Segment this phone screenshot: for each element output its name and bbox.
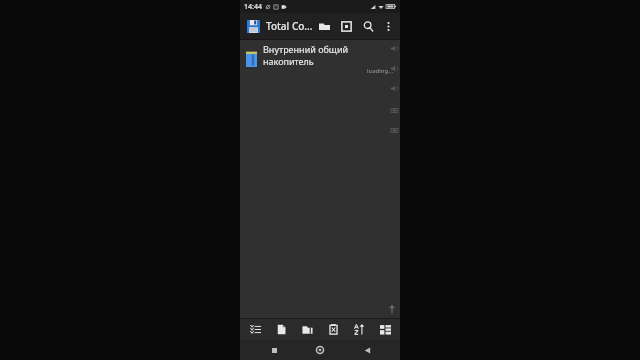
button[interactable]: Select	[244, 319, 266, 340]
staticText: накопитель	[263, 55, 314, 67]
button[interactable]: Folders	[313, 15, 335, 37]
button[interactable]: Apps	[335, 15, 357, 37]
button[interactable]: Recents	[261, 340, 287, 360]
button[interactable]: New file	[270, 319, 292, 340]
button[interactable]: Delete	[322, 319, 344, 340]
button[interactable]: Exchange	[374, 319, 396, 340]
button[interactable]: New folder	[296, 319, 318, 340]
button[interactable]: Search	[357, 15, 379, 37]
staticText: Total Co...	[266, 19, 313, 33]
button[interactable]: Sort	[348, 319, 370, 340]
staticText: Внутренний общий	[263, 43, 349, 55]
button[interactable]: Total Commander	[243, 16, 263, 36]
button[interactable]: Home	[307, 340, 333, 360]
button[interactable]: More options	[379, 15, 397, 37]
staticText: 14:44	[244, 2, 262, 12]
button[interactable]: Back	[354, 340, 380, 360]
button[interactable]: Внутренний общий	[240, 40, 400, 78]
staticText: loading...	[367, 67, 394, 75]
